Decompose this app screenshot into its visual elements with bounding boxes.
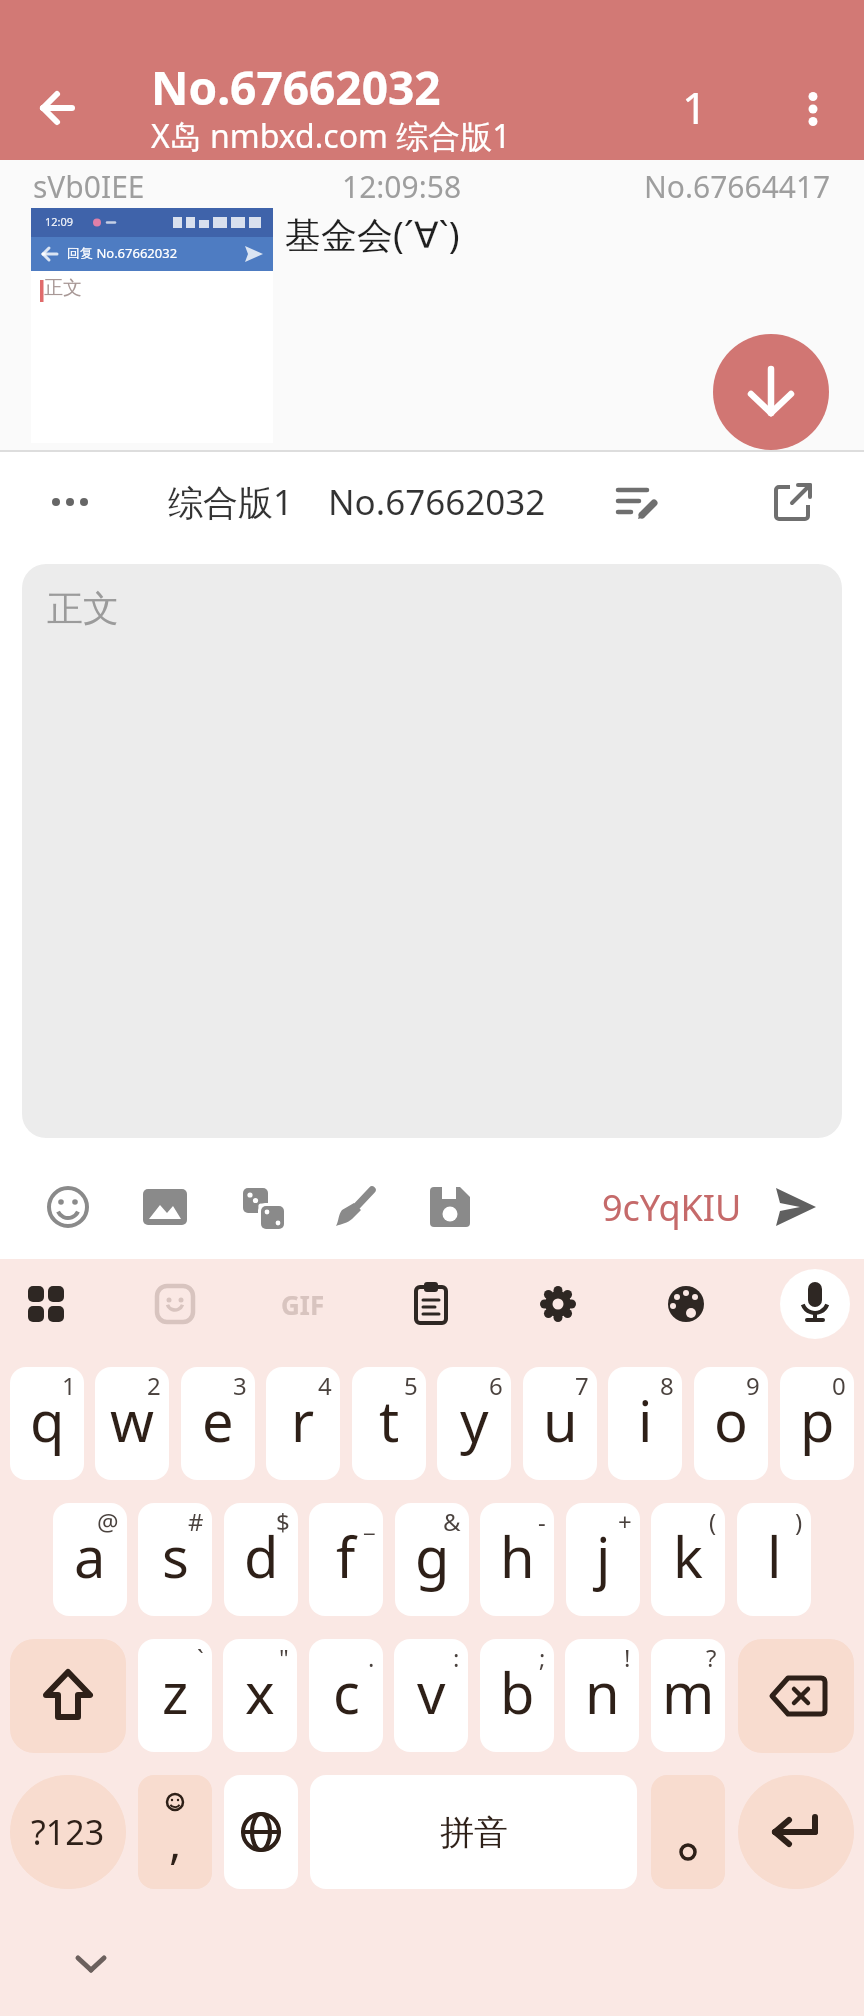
button[interactable]: f: [309, 1503, 383, 1616]
button[interactable]: z: [138, 1639, 212, 1752]
button[interactable]: [422, 1179, 478, 1235]
button[interactable]: v: [394, 1639, 468, 1752]
staticText: r: [291, 1382, 315, 1458]
button[interactable]: e: [181, 1367, 255, 1480]
staticText: j: [596, 1518, 611, 1594]
button[interactable]: [658, 1276, 714, 1332]
button[interactable]: [765, 474, 821, 530]
button[interactable]: w: [95, 1367, 169, 1480]
button[interactable]: u: [523, 1367, 597, 1480]
staticText: X岛 nmbxd.com 综合版1: [151, 114, 511, 158]
button[interactable]: [780, 1269, 850, 1339]
button[interactable]: [327, 1179, 383, 1235]
staticText: p: [800, 1382, 835, 1458]
button[interactable]: b: [480, 1639, 554, 1752]
button[interactable]: [738, 1775, 854, 1889]
staticText: 基金会(´∀`): [285, 210, 460, 259]
staticText: c: [333, 1654, 360, 1730]
button[interactable]: [63, 1944, 119, 1984]
button[interactable]: [609, 474, 665, 530]
button[interactable]: s: [138, 1503, 212, 1616]
button[interactable]: x: [223, 1639, 297, 1752]
staticText: h: [500, 1518, 535, 1594]
staticText: 5: [404, 1369, 418, 1402]
staticText: ?123: [31, 1809, 105, 1855]
button[interactable]: y: [437, 1367, 511, 1480]
staticText: No.67664417: [644, 166, 831, 207]
staticText: ): [795, 1505, 803, 1538]
staticText: f: [336, 1518, 356, 1594]
button[interactable]: j: [566, 1503, 640, 1616]
button[interactable]: [224, 1775, 298, 1889]
button[interactable]: [147, 1276, 203, 1332]
button[interactable]: d: [224, 1503, 298, 1616]
button[interactable]: [713, 334, 829, 450]
staticText: 8: [660, 1369, 674, 1402]
button[interactable]: t: [352, 1367, 426, 1480]
button[interactable]: a: [53, 1503, 127, 1616]
button[interactable]: [18, 1276, 74, 1332]
button[interactable]: [767, 1179, 823, 1235]
button[interactable]: [10, 1639, 126, 1753]
staticText: @: [97, 1505, 119, 1538]
staticText: &: [443, 1505, 461, 1538]
staticText: 综合版1: [168, 478, 294, 526]
button[interactable]: n: [565, 1639, 639, 1752]
staticText: 12:09: [45, 214, 74, 229]
staticText: t: [379, 1382, 400, 1458]
staticText: m: [662, 1654, 715, 1730]
button[interactable]: ?123: [10, 1775, 126, 1889]
staticText: .: [368, 1641, 375, 1674]
button[interactable]: [530, 1276, 586, 1332]
staticText: 0: [832, 1369, 846, 1402]
staticText: `: [197, 1641, 204, 1674]
button[interactable]: [137, 1179, 193, 1235]
button[interactable]: [651, 1775, 725, 1889]
button[interactable]: [236, 1179, 292, 1235]
staticText: o: [714, 1382, 748, 1458]
staticText: 9: [746, 1369, 760, 1402]
button[interactable]: q: [10, 1367, 84, 1480]
staticText: u: [543, 1382, 578, 1458]
button[interactable]: p: [780, 1367, 854, 1480]
staticText: e: [202, 1382, 234, 1458]
button[interactable]: m: [651, 1639, 725, 1752]
button[interactable]: o: [694, 1367, 768, 1480]
button[interactable]: [403, 1276, 459, 1332]
button[interactable]: k: [651, 1503, 725, 1616]
button[interactable]: No.67662032: [322, 474, 552, 530]
button[interactable]: 拼音: [310, 1775, 637, 1889]
button[interactable]: 12:09: [31, 208, 273, 443]
staticText: 拼音: [440, 1811, 508, 1854]
button[interactable]: g: [395, 1503, 469, 1616]
button[interactable]: [785, 81, 841, 137]
button[interactable]: [42, 474, 98, 530]
button[interactable]: h: [480, 1503, 554, 1616]
button[interactable]: 1: [663, 75, 727, 139]
staticText: q: [30, 1382, 65, 1458]
staticText: #: [188, 1505, 204, 1538]
button[interactable]: [40, 1179, 96, 1235]
button[interactable]: GIF: [275, 1276, 331, 1332]
staticText: 正文: [47, 586, 119, 631]
button[interactable]: l: [737, 1503, 811, 1616]
staticText: g: [415, 1518, 450, 1594]
staticText: i: [638, 1382, 653, 1458]
button[interactable]: c: [309, 1639, 383, 1752]
staticText: y: [460, 1382, 489, 1458]
staticText: n: [585, 1654, 620, 1730]
staticText: v: [417, 1654, 446, 1730]
staticText: w: [110, 1382, 155, 1458]
staticText: !: [624, 1641, 631, 1674]
staticText: ": [279, 1641, 289, 1674]
button[interactable]: ,: [138, 1775, 212, 1889]
button[interactable]: 综合版1: [141, 474, 321, 530]
button[interactable]: 9cYqKIU: [602, 1179, 742, 1235]
staticText: 7: [575, 1369, 589, 1402]
button[interactable]: [29, 80, 85, 136]
staticText: z: [162, 1654, 189, 1730]
button[interactable]: [738, 1639, 854, 1753]
button[interactable]: r: [266, 1367, 340, 1480]
button[interactable]: i: [608, 1367, 682, 1480]
